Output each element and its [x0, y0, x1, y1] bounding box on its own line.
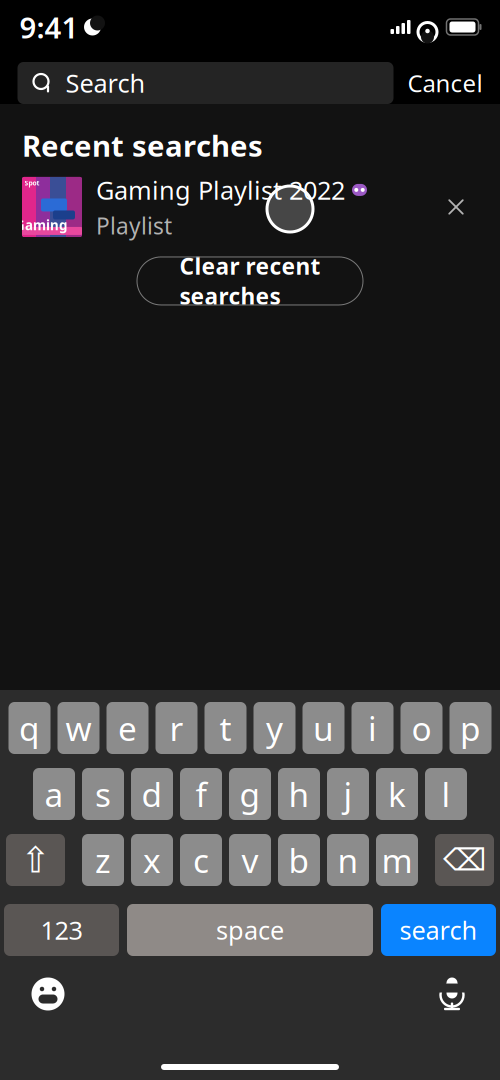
- button[interactable]: c: [180, 834, 222, 886]
- button[interactable]: Gaming: [0, 169, 500, 245]
- staticText: Gaming: [15, 216, 67, 234]
- staticText: a: [44, 772, 63, 816]
- staticText: v: [241, 838, 258, 882]
- staticText: p: [460, 706, 481, 750]
- staticText: i: [368, 706, 377, 750]
- button[interactable]: Cancel: [401, 62, 488, 104]
- staticText: n: [337, 838, 358, 882]
- button[interactable]: j: [327, 768, 369, 820]
- staticText: 123: [40, 913, 82, 947]
- staticText: 9:41: [19, 7, 78, 46]
- staticText: e: [118, 706, 137, 750]
- button[interactable]: t: [204, 702, 246, 754]
- staticText: x: [143, 838, 161, 882]
- button[interactable]: 123: [4, 904, 119, 956]
- staticText: f: [195, 772, 206, 816]
- staticText: u: [313, 706, 334, 750]
- button[interactable]: Remove from recent searches: [433, 184, 479, 230]
- button[interactable]: u: [302, 702, 344, 754]
- button[interactable]: w: [57, 702, 99, 754]
- staticText: ⌫: [443, 843, 486, 877]
- button[interactable]: d: [131, 768, 173, 820]
- staticText: w: [65, 706, 91, 750]
- button[interactable]: e: [106, 702, 148, 754]
- staticText: Cancel: [407, 67, 482, 99]
- button[interactable]: Search: [17, 62, 393, 104]
- button[interactable]: Clear recent searches: [137, 257, 363, 305]
- button[interactable]: f: [180, 768, 222, 820]
- button[interactable]: p: [449, 702, 491, 754]
- button[interactable]: k: [376, 768, 418, 820]
- staticText: m: [381, 838, 412, 882]
- staticText: b: [288, 838, 309, 882]
- button[interactable]: v: [229, 834, 271, 886]
- button[interactable]: x: [131, 834, 173, 886]
- staticText: d: [141, 772, 162, 816]
- staticText: ⇧: [20, 840, 50, 880]
- staticText: Gaming Playlist 2022: [96, 173, 345, 207]
- staticText: h: [288, 772, 309, 816]
- staticText: r: [169, 706, 183, 750]
- button[interactable]: space: [127, 904, 373, 956]
- staticText: Spot: [24, 178, 39, 187]
- staticText: j: [343, 772, 352, 816]
- staticText: search: [399, 913, 477, 947]
- button[interactable]: Shift: [6, 834, 65, 886]
- button[interactable]: q: [8, 702, 50, 754]
- button[interactable]: search: [381, 904, 496, 956]
- button[interactable]: r: [155, 702, 197, 754]
- staticText: Recent searches: [22, 126, 263, 165]
- button[interactable]: Delete: [435, 834, 494, 886]
- button[interactable]: s: [82, 768, 124, 820]
- staticText: Search: [65, 66, 145, 100]
- button[interactable]: y: [253, 702, 295, 754]
- button[interactable]: Dictation: [426, 968, 478, 1020]
- button[interactable]: m: [376, 834, 418, 886]
- staticText: Playlist: [96, 211, 172, 241]
- button[interactable]: h: [278, 768, 320, 820]
- staticText: y: [266, 706, 283, 750]
- staticText: s: [95, 772, 111, 816]
- staticText: Clear recent searches: [179, 251, 320, 311]
- button[interactable]: l: [425, 768, 467, 820]
- staticText: space: [216, 913, 284, 947]
- staticText: o: [411, 706, 431, 750]
- button[interactable]: a: [33, 768, 75, 820]
- staticText: t: [219, 706, 231, 750]
- button[interactable]: o: [400, 702, 442, 754]
- staticText: q: [19, 706, 40, 750]
- staticText: g: [239, 772, 260, 816]
- staticText: c: [193, 838, 209, 882]
- button[interactable]: Emoji keyboard: [22, 968, 74, 1020]
- button[interactable]: g: [229, 768, 271, 820]
- button[interactable]: z: [82, 834, 124, 886]
- staticText: k: [388, 772, 406, 816]
- staticText: z: [95, 838, 111, 882]
- button[interactable]: b: [278, 834, 320, 886]
- button[interactable]: i: [351, 702, 393, 754]
- staticText: l: [441, 772, 450, 816]
- button[interactable]: n: [327, 834, 369, 886]
